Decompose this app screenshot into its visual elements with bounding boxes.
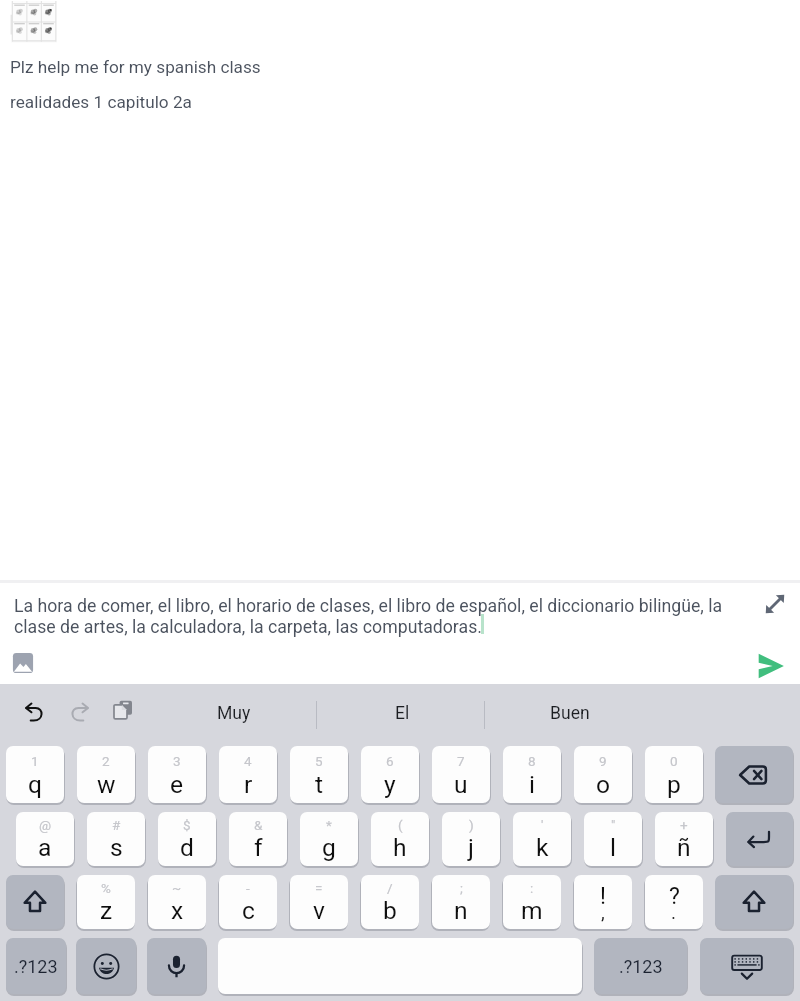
staticText: El	[395, 703, 410, 724]
staticText: e	[170, 770, 184, 799]
button[interactable]: 3	[148, 746, 206, 803]
button[interactable]: Expand	[764, 593, 786, 615]
staticText: (	[398, 817, 403, 833]
button[interactable]: Send	[757, 652, 785, 680]
button[interactable]: Attach image	[11, 651, 35, 675]
button[interactable]: (	[371, 812, 429, 866]
button[interactable]: +	[655, 812, 713, 866]
button[interactable]: kbdown	[700, 938, 793, 994]
staticText: w	[97, 770, 116, 799]
staticText: &	[254, 817, 263, 833]
button[interactable]: Clipboard	[113, 700, 133, 725]
staticText: )	[469, 817, 474, 833]
button[interactable]: '	[513, 812, 571, 866]
button[interactable]: -	[219, 875, 277, 929]
button[interactable]: Buen	[486, 684, 654, 742]
button[interactable]: 7	[432, 746, 490, 803]
button[interactable]: :	[503, 875, 561, 929]
staticText: 1	[31, 753, 39, 769]
button[interactable]: mic	[147, 938, 206, 994]
staticText: r	[244, 770, 253, 799]
staticText: 0	[670, 753, 678, 769]
button[interactable]: *	[300, 812, 358, 866]
staticText: ?	[669, 883, 680, 910]
button[interactable]: .?123	[594, 938, 687, 994]
staticText: +	[680, 817, 688, 833]
button[interactable]: .?123	[6, 938, 66, 994]
staticText: 3	[173, 753, 181, 769]
staticText: n	[454, 896, 468, 925]
staticText: q	[28, 770, 42, 799]
staticText: .	[671, 901, 677, 923]
staticText: y	[384, 770, 396, 799]
staticText: t	[315, 770, 324, 799]
staticText: Plz help me for my spanish class	[10, 57, 261, 77]
button[interactable]: backspace	[715, 746, 793, 803]
button[interactable]: ?	[645, 875, 703, 929]
staticText: d	[180, 833, 194, 862]
button[interactable]: 5	[290, 746, 348, 803]
button[interactable]: 2	[77, 746, 135, 803]
button[interactable]: shift	[6, 875, 64, 929]
button[interactable]: 1	[6, 746, 64, 803]
staticText: :	[530, 880, 534, 896]
button[interactable]: %	[77, 875, 135, 929]
staticText: 8	[528, 753, 536, 769]
staticText: -	[246, 880, 250, 896]
button[interactable]: ;	[432, 875, 490, 929]
button[interactable]: =	[290, 875, 348, 929]
staticText: h	[393, 833, 407, 862]
staticText: 2	[102, 753, 110, 769]
staticText: '	[541, 817, 544, 833]
button[interactable]: !	[574, 875, 632, 929]
staticText: ,	[601, 901, 605, 923]
staticText: ñ	[677, 833, 691, 862]
staticText: realidades 1 capitulo 2a	[10, 92, 192, 112]
button[interactable]: shift	[715, 875, 793, 929]
staticText: o	[596, 770, 611, 799]
staticText: 7	[457, 753, 465, 769]
staticText: z	[100, 896, 113, 925]
button[interactable]: 0	[645, 746, 703, 803]
button[interactable]: 4	[219, 746, 277, 803]
staticText: #	[112, 817, 121, 833]
staticText: f	[254, 833, 263, 862]
button[interactable]: @	[16, 812, 74, 866]
staticText: m	[521, 896, 543, 925]
button[interactable]: Redo	[70, 703, 89, 722]
button[interactable]: $	[158, 812, 216, 866]
staticText: x	[171, 896, 184, 925]
staticText: l	[610, 833, 616, 862]
button[interactable]: &	[229, 812, 287, 866]
staticText: /	[387, 880, 393, 896]
staticText: La hora de comer, el libro, el horario d…	[14, 596, 736, 638]
staticText: g	[322, 833, 336, 862]
staticText: .?123	[14, 956, 58, 977]
staticText: 4	[244, 753, 252, 769]
staticText: j	[468, 833, 474, 862]
staticText: Muy	[217, 703, 251, 724]
button[interactable]: 6	[361, 746, 419, 803]
button[interactable]: El	[318, 684, 486, 742]
button[interactable]: /	[361, 875, 419, 929]
staticText: 9	[599, 753, 607, 769]
button[interactable]: "	[584, 812, 642, 866]
button[interactable]: Muy	[150, 684, 318, 742]
button[interactable]: 9	[574, 746, 632, 803]
button[interactable]: enter	[726, 812, 793, 866]
staticText: v	[313, 896, 325, 925]
staticText: $	[183, 817, 191, 833]
button[interactable]: #	[87, 812, 145, 866]
button[interactable]: 8	[503, 746, 561, 803]
staticText: 5	[315, 753, 323, 769]
button[interactable]: ~	[148, 875, 206, 929]
staticText: c	[242, 896, 255, 925]
staticText: b	[383, 896, 397, 925]
staticText: .?123	[619, 956, 663, 977]
button[interactable]: emoji	[76, 938, 136, 994]
staticText: =	[315, 880, 323, 896]
button[interactable]: )	[442, 812, 500, 866]
staticText: !	[600, 883, 606, 910]
button[interactable]: Undo	[25, 703, 44, 722]
